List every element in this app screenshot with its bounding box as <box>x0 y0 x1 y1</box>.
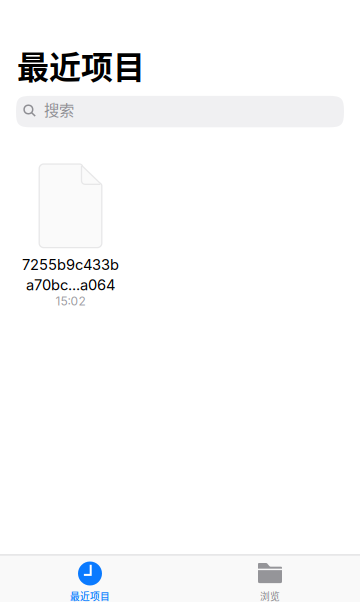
staticText: 搜索 <box>44 98 74 120</box>
button[interactable]: 7255b9c433b <box>16 163 125 308</box>
staticText: 最近项目 <box>70 589 110 602</box>
staticText: a70bc...a064 <box>26 276 115 294</box>
staticText: 7255b9c433b <box>22 256 119 273</box>
button[interactable]: 浏览 <box>180 555 360 602</box>
staticText: 浏览 <box>260 589 280 602</box>
staticText: 15:02 <box>55 294 85 308</box>
staticText: 最近项目 <box>17 42 145 88</box>
button[interactable]: 搜索 <box>16 96 344 127</box>
button[interactable]: 最近项目 <box>0 555 180 602</box>
